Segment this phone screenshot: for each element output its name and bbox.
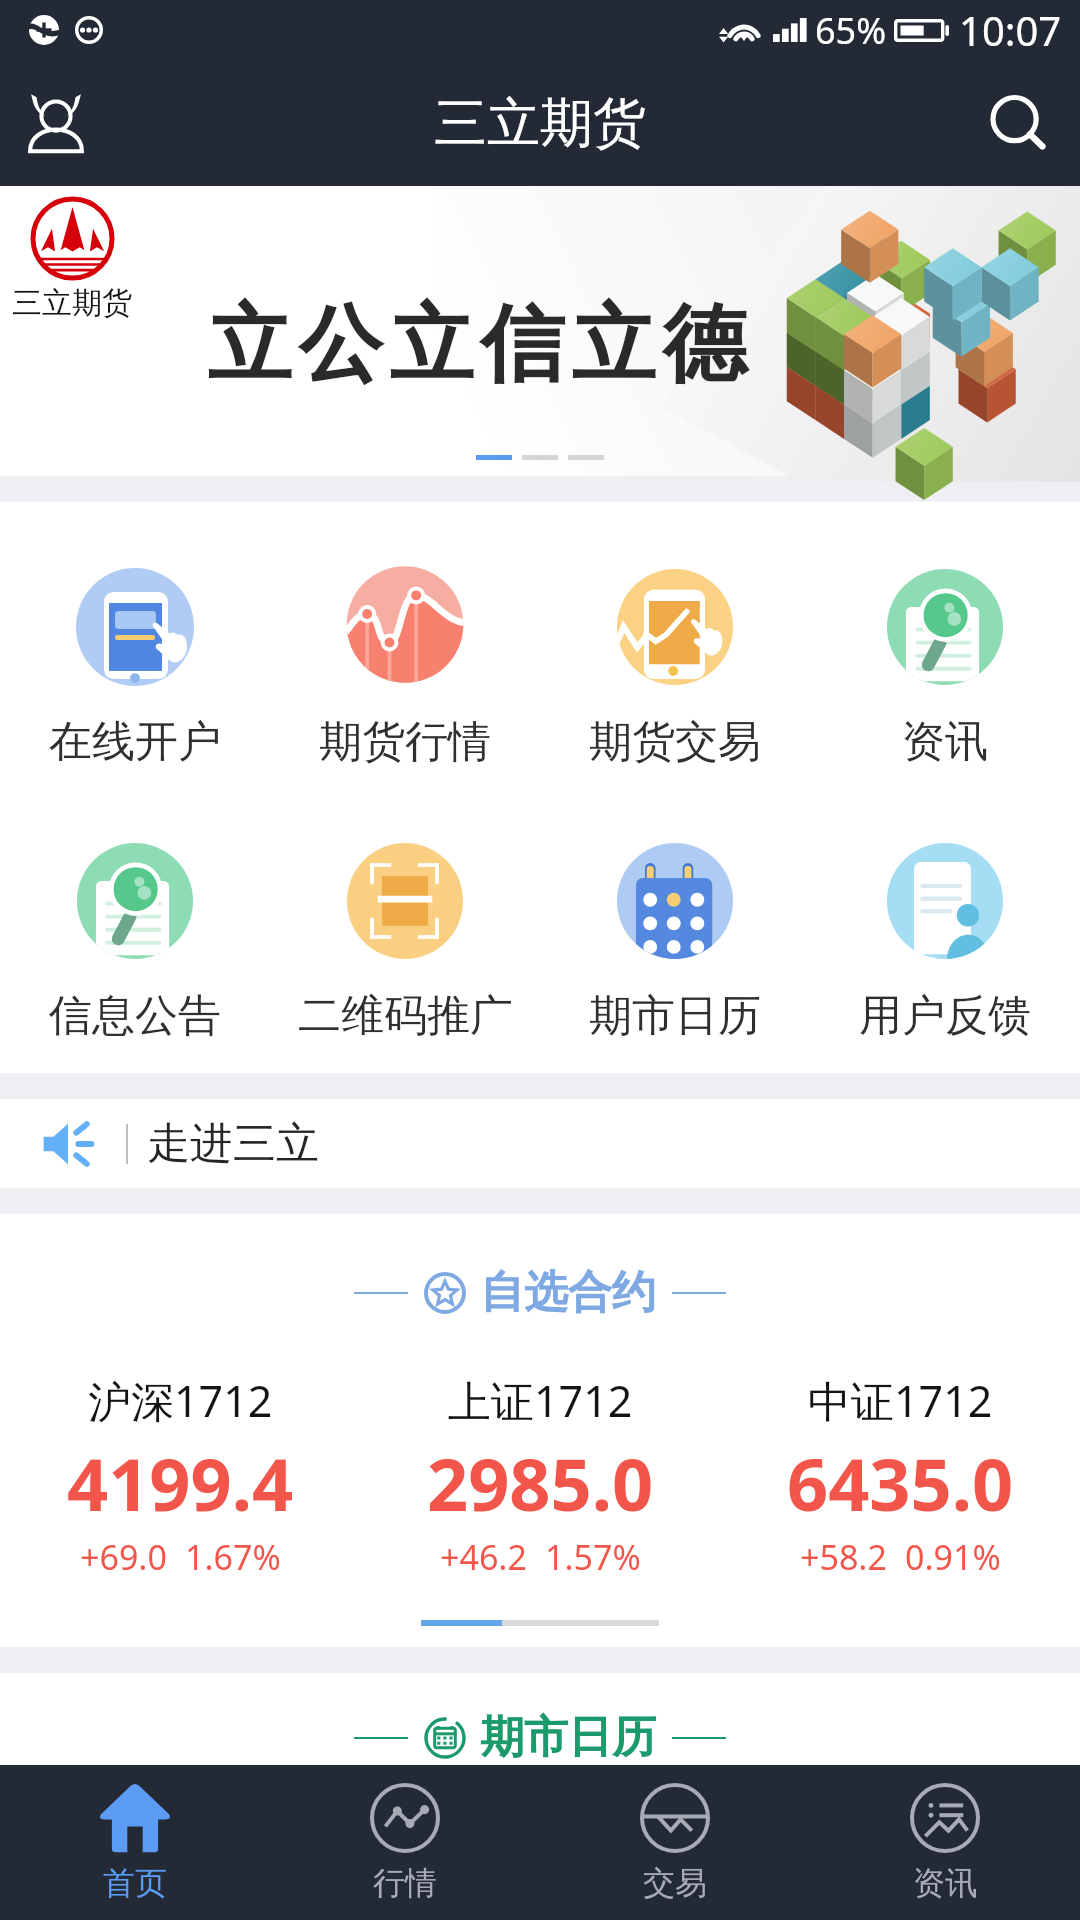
staticText: 沪深1712 xyxy=(88,1371,273,1430)
staticText: 立公立信立德 xyxy=(204,292,750,398)
staticText: 2985.0 xyxy=(427,1434,654,1532)
button[interactable]: 信息公告 xyxy=(0,839,270,1043)
staticText: +69.0 xyxy=(80,1534,167,1580)
button[interactable]: Search xyxy=(964,68,1074,178)
staticText: 中证1712 xyxy=(808,1371,993,1430)
staticText: 0.91% xyxy=(905,1534,1001,1580)
staticText: 期市日历 xyxy=(480,1710,656,1765)
staticText: 二维码推广 xyxy=(298,989,513,1043)
button[interactable]: 交易 xyxy=(540,1765,810,1920)
staticText: 1.67% xyxy=(185,1534,281,1580)
staticText: 期货行情 xyxy=(319,715,491,769)
button[interactable]: 期货行情 xyxy=(270,565,540,769)
staticText: 三立期货 xyxy=(12,284,132,322)
button[interactable]: 行情 xyxy=(270,1765,540,1920)
button[interactable]: 用户反馈 xyxy=(810,839,1080,1043)
staticText: 资讯 xyxy=(902,715,988,769)
button[interactable]: 沪深1712 xyxy=(0,1371,360,1580)
staticText: 资讯 xyxy=(913,1863,977,1903)
staticText: +46.2 xyxy=(440,1534,527,1580)
button[interactable]: 走进三立 xyxy=(0,1099,1080,1188)
button[interactable]: 资讯 xyxy=(810,565,1080,769)
button[interactable]: 三立期货 xyxy=(0,186,1080,476)
staticText: 在线开户 xyxy=(49,715,221,769)
button[interactable]: Profile xyxy=(1,68,111,178)
button[interactable]: 首页 xyxy=(0,1765,270,1920)
staticText: 用户反馈 xyxy=(859,989,1031,1043)
staticText: 行情 xyxy=(373,1863,437,1903)
staticText: 6435.0 xyxy=(787,1434,1014,1532)
button[interactable]: 资讯 xyxy=(810,1765,1080,1920)
staticText: 首页 xyxy=(103,1863,167,1903)
button[interactable]: 在线开户 xyxy=(0,565,270,769)
button[interactable]: 期货交易 xyxy=(540,565,810,769)
staticText: 上证1712 xyxy=(448,1371,633,1430)
staticText: 4199.4 xyxy=(67,1434,294,1532)
staticText: 交易 xyxy=(643,1863,707,1903)
staticText: 三立期货 xyxy=(434,90,646,157)
button[interactable]: 二维码推广 xyxy=(270,839,540,1043)
staticText: 信息公告 xyxy=(49,989,221,1043)
staticText: 65% xyxy=(815,6,887,55)
staticText: 走进三立 xyxy=(147,1117,319,1171)
staticText: 自选合约 xyxy=(480,1265,656,1320)
staticText: 期货交易 xyxy=(589,715,761,769)
staticText: +58.2 xyxy=(800,1534,887,1580)
button[interactable]: 上证1712 xyxy=(360,1371,720,1580)
staticText: 期市日历 xyxy=(589,989,761,1043)
button[interactable]: 期市日历 xyxy=(540,839,810,1043)
staticText: 1.57% xyxy=(545,1534,641,1580)
button[interactable]: 中证1712 xyxy=(720,1371,1080,1580)
staticText: 10:07 xyxy=(959,3,1062,57)
